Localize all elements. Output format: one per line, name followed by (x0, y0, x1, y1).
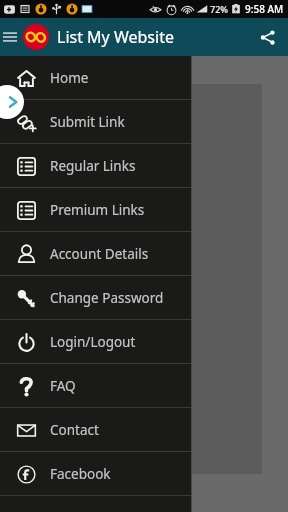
staticText: Contact (50, 421, 99, 439)
staticText: Facebook (50, 465, 111, 483)
button[interactable]: Facebook (0, 452, 192, 495)
button[interactable]: Account Details (0, 232, 192, 275)
button[interactable]: Premium Links (0, 188, 192, 231)
button[interactable]: Submit Link (0, 100, 192, 143)
button[interactable]: Change Password (0, 276, 192, 319)
button[interactable]: Close navigation drawer (0, 85, 24, 119)
staticText: register for free! (22, 301, 107, 316)
staticText: Home (50, 69, 89, 87)
staticText: Submit Link (50, 113, 125, 131)
button[interactable]: Login/Logout (0, 320, 192, 363)
button[interactable]: Regular Links (0, 144, 192, 187)
staticText: FAQ (50, 377, 76, 395)
staticText: 9:58 AM (245, 2, 284, 16)
staticText: 72% (210, 3, 228, 15)
staticText: Account Details (50, 245, 149, 263)
button[interactable]: Share (248, 18, 286, 56)
staticText: Change Password (50, 289, 164, 307)
button[interactable]: FAQ (0, 364, 192, 407)
staticText: Premium Links (50, 201, 145, 219)
button[interactable]: Contact (0, 408, 192, 451)
staticText: Regular Links (50, 157, 136, 175)
staticText: Please use your (22, 130, 103, 145)
staticText: Login/Logout (50, 333, 136, 351)
button[interactable]: Open navigation drawer (0, 18, 20, 56)
button[interactable]: Home (0, 56, 192, 99)
staticText: List My Website (57, 26, 174, 48)
